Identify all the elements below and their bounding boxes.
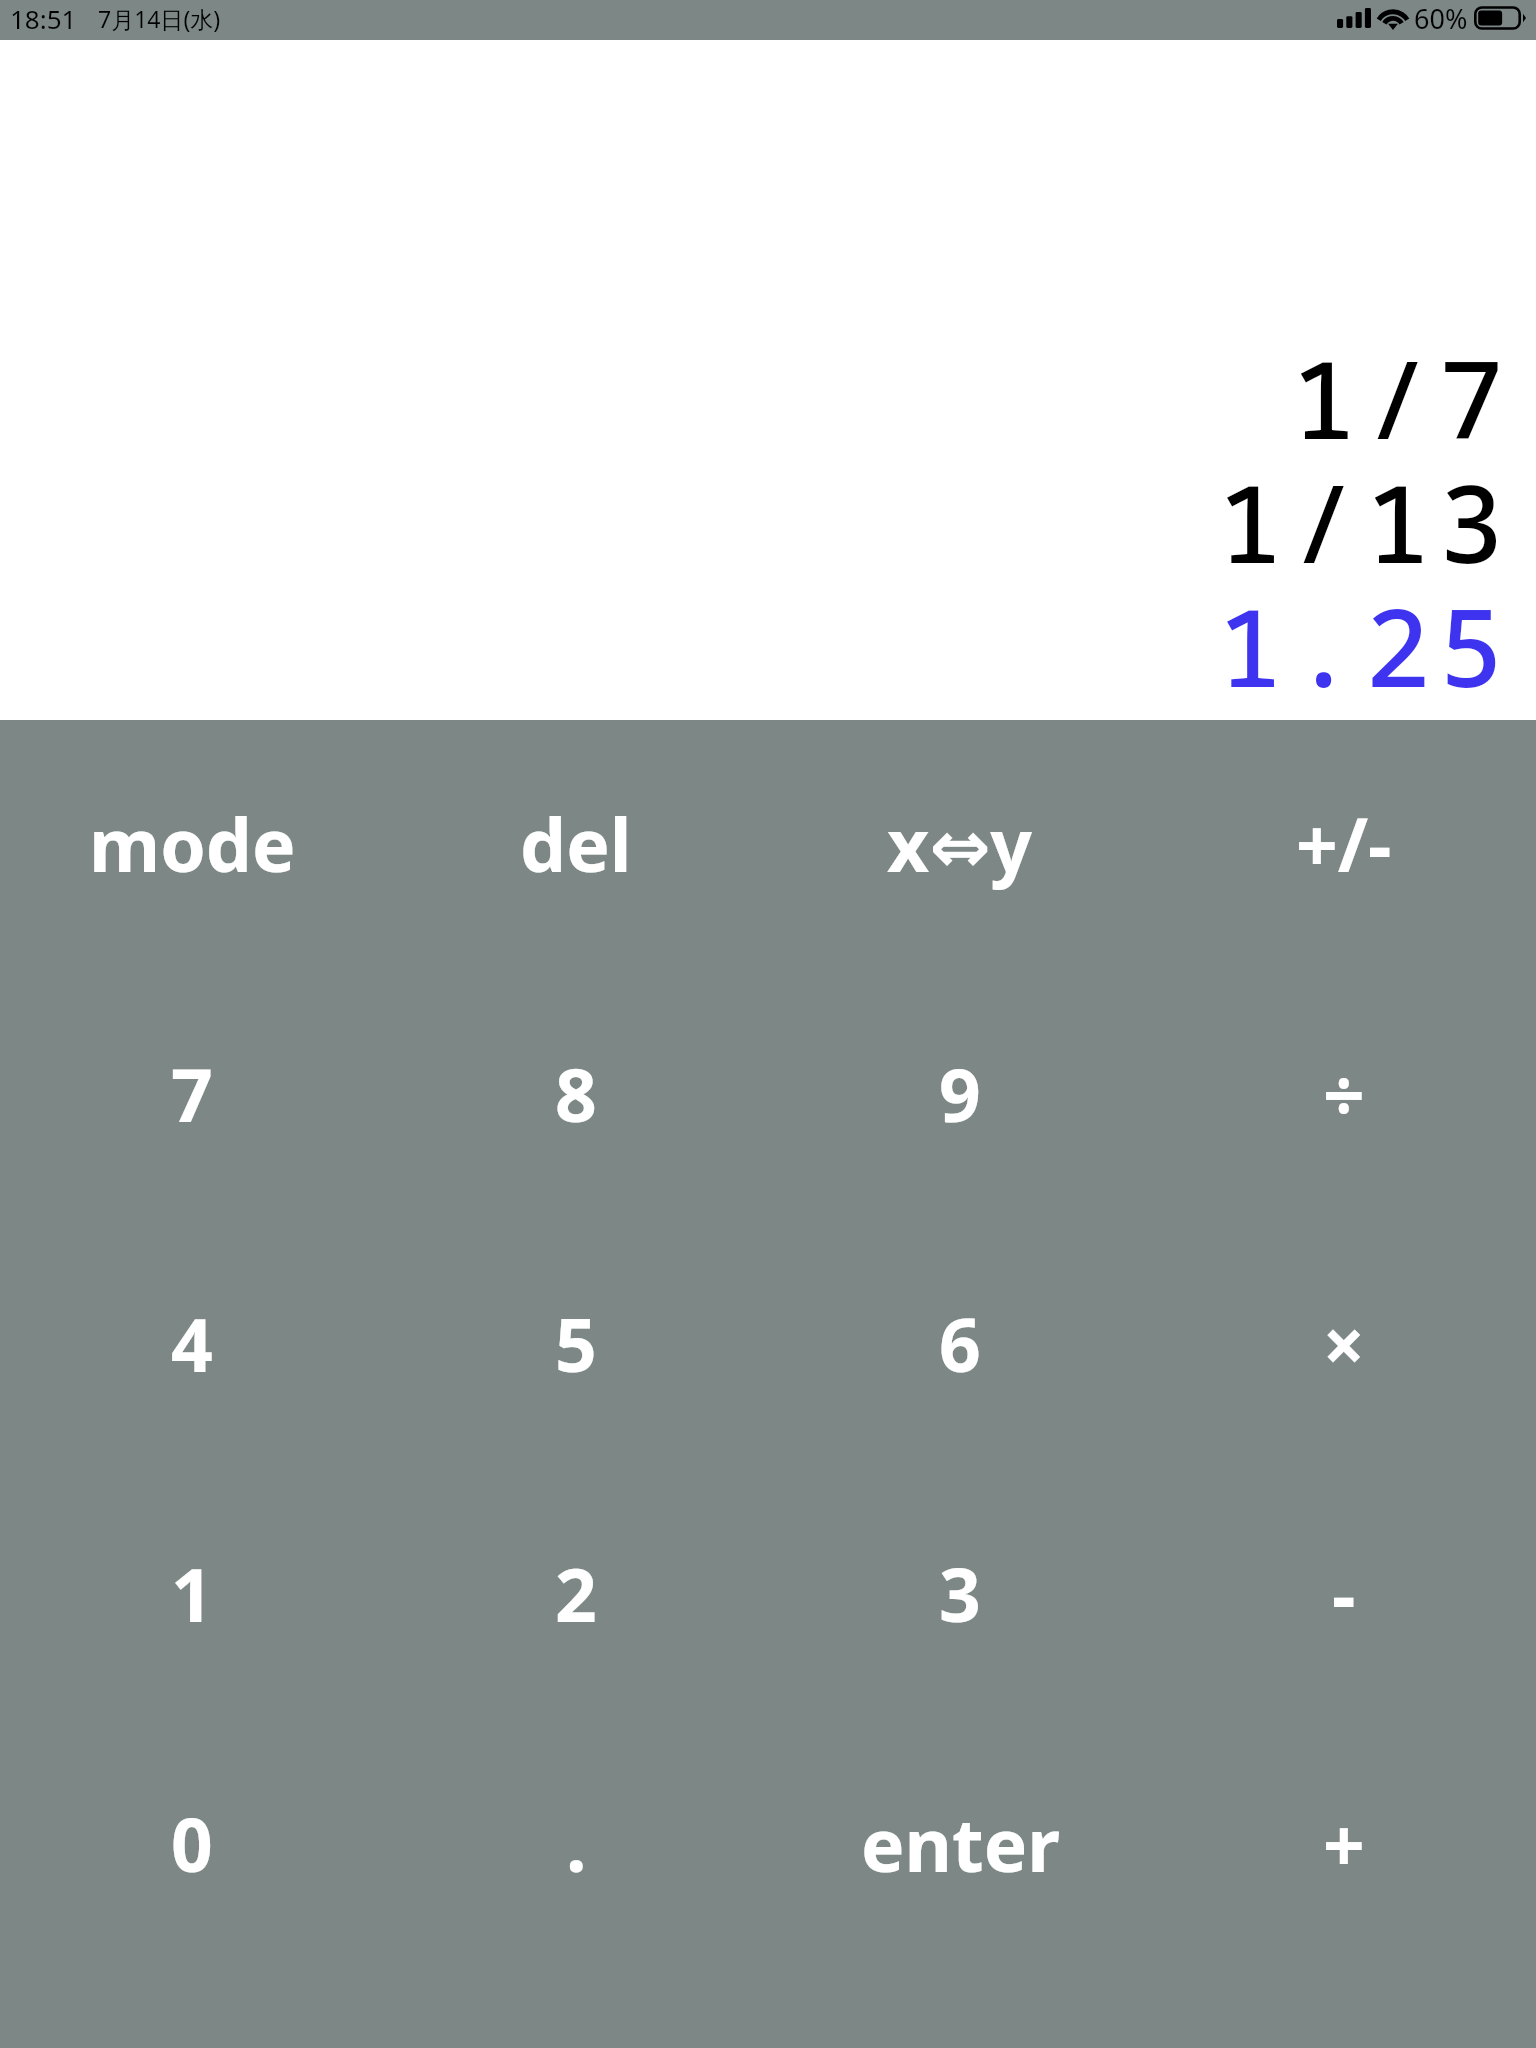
button[interactable]: 5 xyxy=(384,1218,768,1468)
staticText: 5 xyxy=(555,1294,597,1393)
staticText: 8 xyxy=(555,1044,597,1143)
staticText: 3 xyxy=(939,1544,981,1643)
button[interactable]: 0 xyxy=(0,1718,384,1968)
button[interactable]: 6 xyxy=(768,1218,1152,1468)
staticText: 1.25 xyxy=(0,572,1513,719)
staticText: +/- xyxy=(1296,794,1392,893)
staticText: 0 xyxy=(171,1794,213,1893)
button[interactable]: delete xyxy=(384,718,768,968)
staticText: mode xyxy=(89,794,296,893)
staticText: . xyxy=(566,1794,587,1893)
button[interactable]: plus xyxy=(1152,1718,1536,1968)
staticText: 18:51 xyxy=(10,1,77,36)
button[interactable]: mode xyxy=(0,718,384,968)
other: Wi-Fi xyxy=(1379,8,1407,29)
staticText: x⇔y xyxy=(887,794,1033,893)
other: Signal strength xyxy=(1337,8,1371,28)
button[interactable]: 9 xyxy=(768,968,1152,1218)
staticText: 7 xyxy=(171,1044,213,1143)
button[interactable]: 2 xyxy=(384,1468,768,1718)
button[interactable]: decimal point xyxy=(384,1718,768,1968)
staticText: 6 xyxy=(939,1294,981,1393)
staticText: 4 xyxy=(171,1294,213,1393)
other: Battery 60 percent xyxy=(1474,6,1526,30)
staticText: 2 xyxy=(555,1544,597,1643)
staticText: del xyxy=(520,794,632,893)
button[interactable]: minus xyxy=(1152,1468,1536,1718)
staticText: 1/13 xyxy=(0,448,1513,595)
staticText: + xyxy=(1323,1794,1365,1893)
staticText: × xyxy=(1323,1294,1365,1393)
staticText: 7月14日(水) xyxy=(98,3,221,34)
button[interactable]: enter xyxy=(768,1718,1152,1968)
staticText: ÷ xyxy=(1323,1044,1365,1143)
button[interactable]: 4 xyxy=(0,1218,384,1468)
staticText: 9 xyxy=(939,1044,981,1143)
staticText: enter xyxy=(861,1794,1060,1893)
button[interactable]: 8 xyxy=(384,968,768,1218)
button[interactable]: 3 xyxy=(768,1468,1152,1718)
staticText: - xyxy=(1332,1544,1356,1643)
button[interactable]: multiply xyxy=(1152,1218,1536,1468)
button[interactable]: swap x and y xyxy=(768,718,1152,968)
button[interactable]: 1 xyxy=(0,1468,384,1718)
staticText: 60% xyxy=(1414,0,1468,37)
button[interactable]: plus minus xyxy=(1152,718,1536,968)
staticText: 1 xyxy=(171,1544,213,1643)
button[interactable]: divide xyxy=(1152,968,1536,1218)
staticText: 1/7 xyxy=(0,324,1513,471)
button[interactable]: 7 xyxy=(0,968,384,1218)
